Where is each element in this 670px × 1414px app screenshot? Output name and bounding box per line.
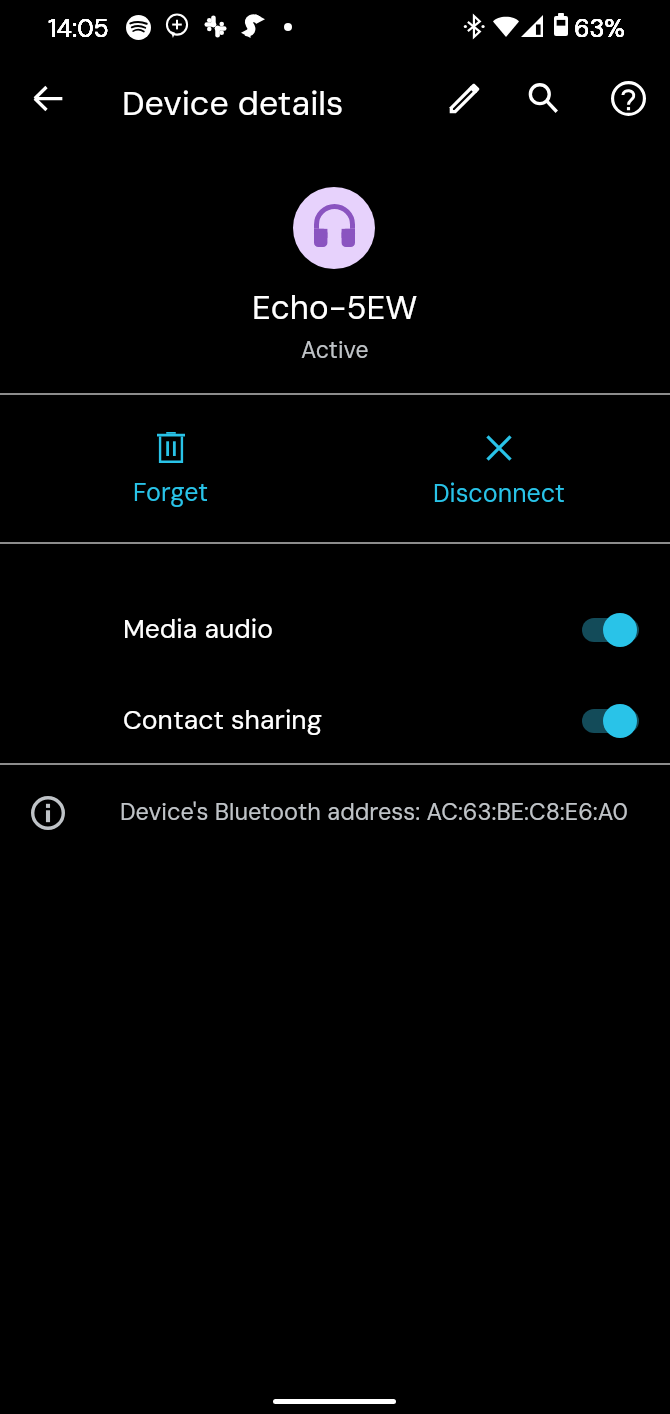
button[interactable]: Information bbox=[0, 765, 670, 860]
staticText: Active bbox=[301, 335, 369, 365]
button[interactable]: Help bbox=[604, 74, 652, 122]
button[interactable]: Search bbox=[519, 74, 567, 122]
button[interactable]: Contact sharing bbox=[0, 675, 670, 766]
staticText: 63% bbox=[574, 12, 625, 45]
staticText: 14:05 bbox=[48, 12, 109, 45]
staticText: 63% bbox=[574, 12, 625, 45]
button[interactable]: Edit bbox=[440, 75, 488, 123]
staticText: 14:05 bbox=[48, 12, 109, 45]
staticText: Disconnect bbox=[433, 477, 565, 510]
button[interactable]: Back bbox=[24, 74, 72, 122]
staticText: Device's Bluetooth address: AC:63:BE:C8:… bbox=[120, 797, 628, 828]
button[interactable]: Forget bbox=[0, 395, 335, 542]
button[interactable]: Media audio bbox=[0, 584, 670, 675]
staticText: Device details bbox=[122, 81, 344, 125]
button[interactable]: Disconnect bbox=[335, 395, 670, 542]
other: Information bbox=[31, 796, 65, 830]
staticText: 63% bbox=[574, 12, 625, 45]
staticText: Echo-5EW bbox=[252, 286, 418, 329]
staticText: Forget bbox=[133, 476, 209, 509]
staticText: 14:05 bbox=[48, 12, 109, 45]
staticText: Media audio bbox=[123, 612, 273, 647]
staticText: Contact sharing bbox=[123, 703, 322, 738]
